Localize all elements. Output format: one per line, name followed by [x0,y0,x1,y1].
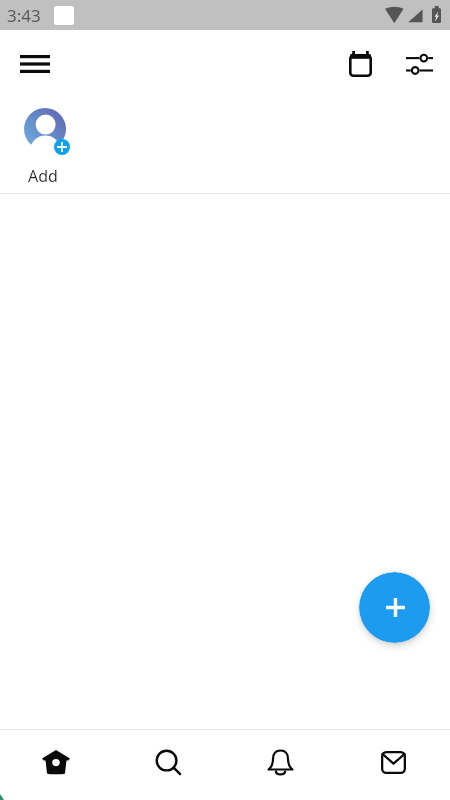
button[interactable]: Calendar [333,36,388,92]
button[interactable]: Search [112,730,224,800]
button[interactable]: Notifications [224,730,337,800]
button[interactable]: Settings [388,36,450,92]
staticText: 3:43 [7,4,41,27]
button[interactable]: Messages [337,730,450,800]
button[interactable]: Home [0,730,112,800]
button[interactable]: Add [24,108,72,187]
button[interactable]: Menu [6,35,64,93]
staticText: Add [28,165,58,187]
button[interactable]: Compose new [359,572,430,643]
